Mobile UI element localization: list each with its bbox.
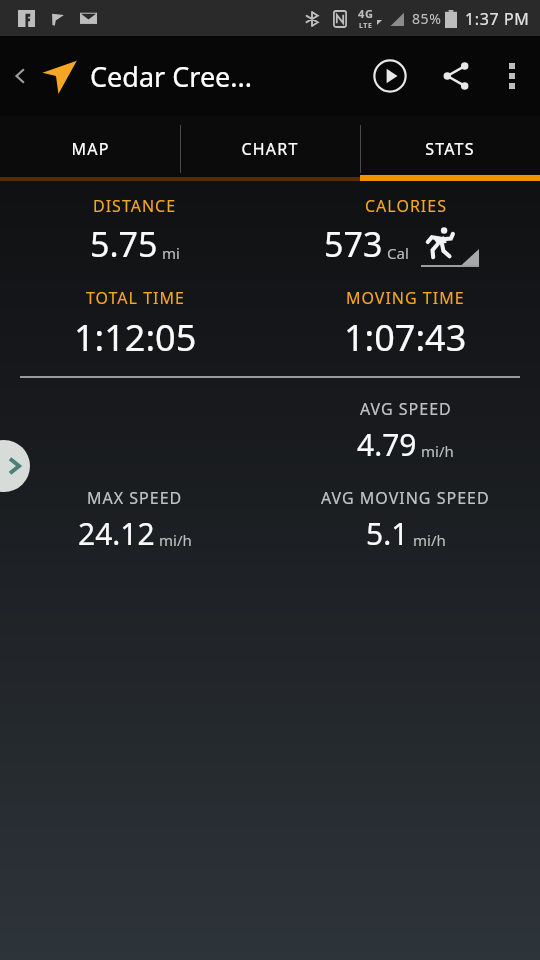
staticText: 1:07:43	[344, 313, 467, 362]
staticText: 24.12	[78, 513, 155, 554]
staticText: TOTAL TIME	[86, 287, 185, 309]
staticText: mi/h	[159, 530, 192, 550]
staticText: AVG SPEED	[360, 398, 452, 420]
button[interactable]: Activity type: running	[421, 225, 487, 267]
button[interactable]: DISTANCE	[90, 195, 180, 267]
button[interactable]: More options	[490, 54, 534, 98]
staticText: 85%	[412, 9, 442, 28]
button[interactable]: TOTAL TIME	[74, 287, 197, 362]
button[interactable]: Open panel	[0, 440, 30, 492]
button[interactable]: CHART	[180, 116, 360, 181]
staticText: MAX SPEED	[87, 487, 183, 509]
staticText: 4.79	[357, 424, 417, 465]
button[interactable]: Cedar Cree...	[90, 58, 366, 95]
staticText: 573	[324, 221, 383, 267]
staticText: CHART	[241, 138, 299, 160]
staticText: STATS	[425, 138, 475, 160]
button[interactable]: MAP	[0, 116, 180, 181]
button[interactable]: Play	[366, 52, 414, 100]
staticText: AVG MOVING SPEED	[321, 487, 490, 509]
staticText: MOVING TIME	[346, 287, 465, 309]
button[interactable]: Back	[6, 61, 36, 91]
staticText: 1:12:05	[74, 313, 197, 362]
button[interactable]: STATS	[360, 116, 540, 181]
staticText: 5.75	[90, 221, 158, 267]
staticText: CALORIES	[365, 195, 447, 217]
staticText: 1:37 PM	[465, 8, 530, 30]
staticText: Cal	[387, 243, 409, 263]
staticText: mi/h	[421, 441, 454, 461]
staticText: 4G	[358, 6, 374, 21]
staticText: mi/h	[413, 530, 446, 550]
staticText: MAP	[71, 138, 110, 160]
staticText: LTE	[359, 21, 373, 31]
button[interactable]: AVG SPEED	[357, 398, 454, 465]
button[interactable]: Share	[432, 52, 480, 100]
button[interactable]: AVG MOVING SPEED	[321, 487, 490, 554]
button[interactable]: MOVING TIME	[344, 287, 467, 362]
staticText: 5.1	[366, 513, 409, 554]
button[interactable]: MAX SPEED	[78, 487, 192, 554]
staticText: mi	[162, 243, 180, 263]
staticText: DISTANCE	[93, 195, 177, 217]
staticText: Cedar Cree...	[90, 58, 253, 95]
